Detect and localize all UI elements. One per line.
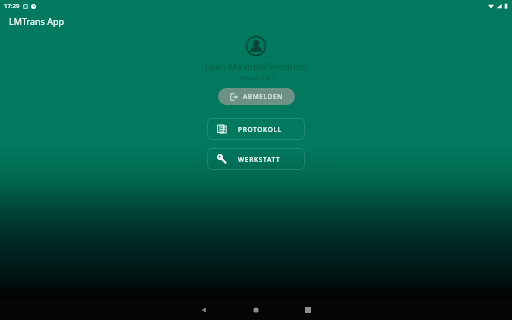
button[interactable]: ABMELDEN bbox=[218, 88, 295, 105]
staticText: Version 1.0.3 bbox=[238, 74, 275, 82]
staticText: LMTrans App bbox=[9, 15, 65, 27]
staticText: Lean Maximal Products bbox=[204, 60, 309, 73]
button[interactable]: Back bbox=[178, 300, 230, 320]
button[interactable]: PROTOKOLL bbox=[207, 118, 305, 140]
staticText: PROTOKOLL bbox=[238, 125, 282, 134]
button[interactable]: Recent apps bbox=[282, 300, 334, 320]
staticText: 17:29 bbox=[4, 2, 20, 10]
other: Account bbox=[246, 36, 266, 56]
staticText: ABMELDEN bbox=[243, 92, 283, 101]
button[interactable]: WERKSTATT bbox=[207, 148, 305, 170]
staticText: WERKSTATT bbox=[238, 155, 281, 164]
button[interactable]: Home bbox=[230, 300, 282, 320]
